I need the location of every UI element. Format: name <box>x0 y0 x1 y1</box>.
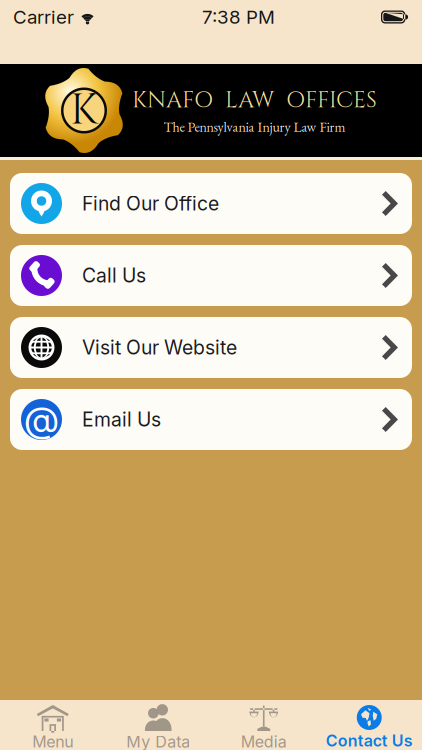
staticText: Visit Our Website <box>82 336 237 359</box>
button[interactable]: Find Our Office <box>10 173 412 234</box>
staticText: My Data <box>126 732 190 750</box>
button[interactable]: @ <box>10 389 412 450</box>
staticText: @ <box>24 398 59 441</box>
staticText: K <box>70 82 98 139</box>
staticText: 7:38 PM <box>202 6 275 28</box>
staticText: Contact Us <box>326 731 413 750</box>
button[interactable]: Menu <box>0 700 105 750</box>
button[interactable]: Visit Our Website <box>10 317 412 378</box>
button[interactable]: Contact Us <box>316 700 422 750</box>
staticText: The Pennsylvania Injury Law Firm <box>163 118 345 136</box>
staticText: Media <box>241 732 287 750</box>
button[interactable]: Call Us <box>10 245 412 306</box>
staticText: KNAFO LAW OFFICES <box>132 85 377 116</box>
staticText: Call Us <box>82 264 146 287</box>
staticText: Email Us <box>82 408 161 431</box>
staticText: Find Our Office <box>82 192 219 215</box>
button[interactable]: My Data <box>105 700 211 750</box>
button[interactable]: Media <box>211 700 316 750</box>
staticText: Carrier <box>13 6 74 28</box>
staticText: Menu <box>32 732 73 750</box>
